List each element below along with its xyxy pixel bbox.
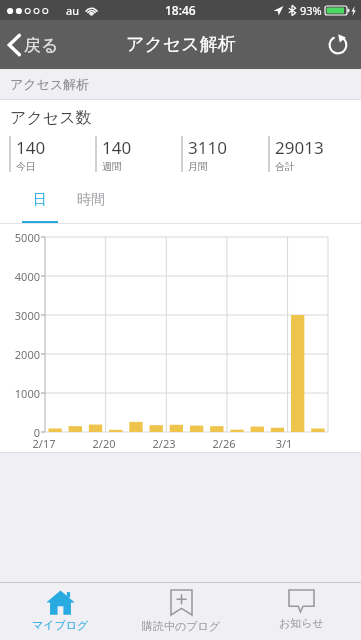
staticText: マイブログ [32, 618, 89, 632]
staticText: 月間 [188, 160, 208, 173]
staticText: 0 [0, 425, 40, 440]
staticText: 週間 [102, 160, 122, 173]
staticText: アクセス解析 [126, 33, 236, 56]
staticText: 29013 [275, 136, 324, 159]
staticText: 今日 [16, 160, 36, 173]
staticText: アクセス数 [10, 108, 92, 128]
button[interactable]: お知らせ [241, 583, 361, 640]
button[interactable]: マイブログ [0, 583, 121, 640]
staticText: 18:46 [165, 2, 196, 18]
staticText: 1000 [0, 386, 40, 401]
staticText: 2/17 [22, 436, 66, 451]
staticText: 3000 [0, 308, 40, 323]
staticText: 2000 [0, 347, 40, 362]
staticText: 140 [102, 136, 132, 159]
staticText: 2/20 [82, 436, 126, 451]
staticText: au [66, 3, 79, 18]
staticText: 3/1 [262, 436, 306, 451]
staticText: 4000 [0, 269, 40, 284]
staticText: 購読中のブログ [142, 619, 221, 633]
staticText: アクセス解析 [10, 76, 90, 92]
staticText: 140 [16, 136, 46, 159]
staticText: 5000 [0, 230, 40, 245]
button[interactable]: 購読中のブログ [121, 583, 241, 640]
staticText: 3110 [188, 136, 227, 159]
button[interactable]: 戻る [0, 26, 69, 64]
staticText: 2/26 [202, 436, 246, 451]
button[interactable]: 日 [22, 183, 58, 224]
staticText: 日 [33, 191, 47, 209]
staticText: 合計 [275, 160, 295, 173]
button[interactable]: Refresh [315, 24, 361, 66]
staticText: 93% [300, 3, 322, 18]
staticText: お知らせ [279, 616, 324, 630]
button[interactable]: 時間 [70, 183, 112, 224]
staticText: 時間 [77, 191, 105, 209]
staticText: 戻る [24, 35, 59, 56]
staticText: 2/23 [142, 436, 186, 451]
